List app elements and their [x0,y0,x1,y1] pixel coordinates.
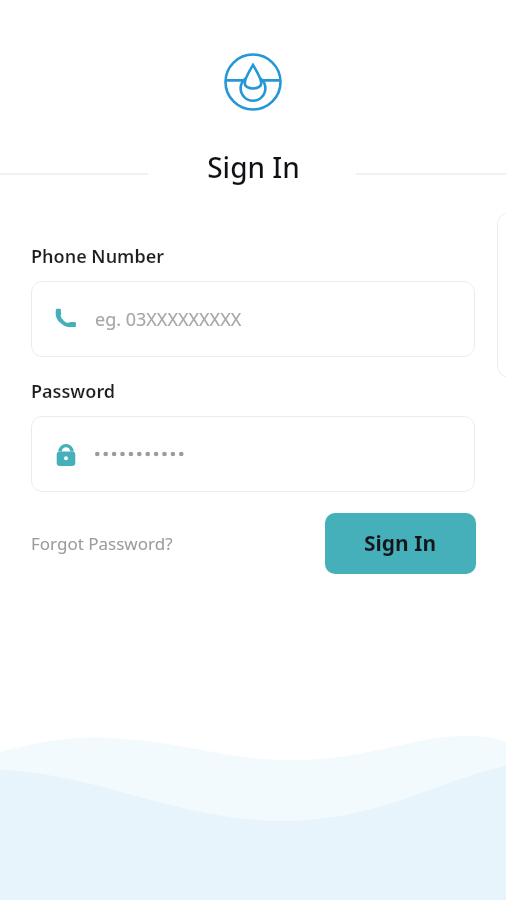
staticText: Sign In [364,529,437,558]
staticText: Phone Number [31,244,165,269]
button[interactable]: eg. 03XXXXXXXXX [31,281,475,357]
button[interactable]: Forgot Password? [31,526,173,561]
staticText: Sign In [207,148,300,186]
staticText: Forgot Password? [31,532,173,555]
button[interactable] [31,416,475,492]
button[interactable]: Sign In [325,513,476,574]
staticText: Password [31,379,116,404]
staticText: eg. 03XXXXXXXXX [95,307,242,332]
